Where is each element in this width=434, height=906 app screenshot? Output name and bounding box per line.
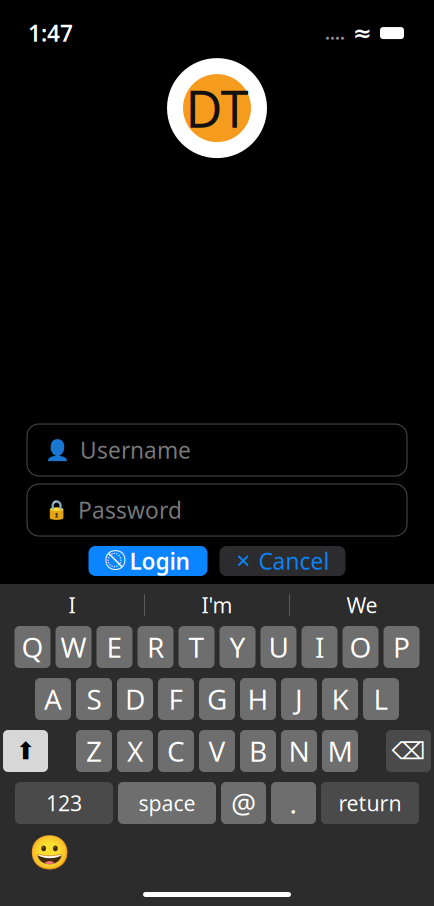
button[interactable]: A (35, 678, 71, 720)
button[interactable]: S (76, 678, 112, 720)
button[interactable]: Q (14, 626, 50, 668)
staticText: L (373, 680, 388, 718)
staticText: J (295, 680, 303, 718)
staticText: ≈ (353, 20, 372, 46)
staticText: M (327, 732, 352, 770)
staticText: E (106, 628, 122, 666)
staticText: N (288, 732, 309, 770)
staticText: R (147, 628, 164, 666)
staticText: ⬆ (15, 737, 35, 765)
button[interactable]: R (137, 626, 173, 668)
button[interactable]: W (55, 626, 91, 668)
button[interactable]: Z (76, 730, 112, 772)
button[interactable]: ⃠ (88, 546, 207, 576)
staticText: 1:47 (28, 18, 73, 48)
button[interactable]: I'm (145, 591, 289, 619)
staticText: ⃠ (106, 551, 122, 571)
staticText: K (331, 680, 348, 718)
staticText: X (127, 732, 143, 770)
button[interactable]: M (322, 730, 358, 772)
button[interactable]: Shift (3, 730, 48, 772)
staticText: return (338, 789, 401, 817)
button[interactable]: ✕ (219, 546, 345, 576)
staticText: A (44, 680, 62, 718)
staticText: D (125, 680, 145, 718)
staticText: P (393, 628, 410, 666)
button[interactable]: return (321, 782, 419, 824)
staticText: .... (325, 21, 345, 44)
staticText: DT (185, 74, 248, 142)
staticText: We (346, 591, 377, 619)
button[interactable]: V (199, 730, 235, 772)
button[interactable]: L (363, 678, 399, 720)
button[interactable]: C (158, 730, 194, 772)
staticText: V (208, 732, 225, 770)
staticText: 🔒 (45, 499, 68, 521)
staticText: U (268, 628, 288, 666)
button[interactable]: space (118, 782, 216, 824)
button[interactable]: G (199, 678, 235, 720)
button[interactable]: Delete (386, 730, 431, 772)
staticText: space (138, 789, 195, 817)
staticText: Cancel (258, 546, 329, 576)
staticText: I (315, 628, 324, 666)
button[interactable]: P (383, 626, 419, 668)
staticText: . (289, 784, 297, 822)
button[interactable]: N (281, 730, 317, 772)
button[interactable]: I (301, 626, 337, 668)
button[interactable]: T (178, 626, 214, 668)
staticText: F (168, 680, 183, 718)
staticText: @ (231, 784, 256, 822)
staticText: 😀 (29, 834, 71, 872)
staticText: B (249, 732, 267, 770)
button[interactable]: K (322, 678, 358, 720)
button[interactable]: I (0, 591, 144, 619)
button[interactable]: U (260, 626, 296, 668)
staticText: Y (229, 628, 245, 666)
staticText: 👤 (45, 439, 70, 461)
button[interactable]: X (117, 730, 153, 772)
button[interactable]: B (240, 730, 276, 772)
staticText: Q (21, 628, 43, 666)
button[interactable]: Emoji (33, 836, 67, 870)
staticText: I (68, 591, 75, 619)
staticText: Username (80, 435, 191, 465)
staticText: 123 (46, 789, 82, 817)
button[interactable]: . (271, 782, 316, 824)
button[interactable]: D (117, 678, 153, 720)
button[interactable]: O (342, 626, 378, 668)
button[interactable]: We (290, 591, 434, 619)
staticText: Password (78, 495, 182, 525)
staticText: H (247, 680, 268, 718)
staticText: G (207, 680, 227, 718)
staticText: Z (86, 732, 102, 770)
staticText: I'm (201, 591, 232, 619)
button[interactable]: Y (219, 626, 255, 668)
staticText: ⌫ (391, 737, 425, 765)
staticText: ✕ (235, 550, 251, 572)
button[interactable]: H (240, 678, 276, 720)
button[interactable]: F (158, 678, 194, 720)
button[interactable]: E (96, 626, 132, 668)
staticText: W (60, 628, 86, 666)
button[interactable]: @ (221, 782, 266, 824)
staticText: S (86, 680, 101, 718)
staticText: T (188, 628, 204, 666)
staticText: O (349, 628, 371, 666)
button[interactable]: J (281, 678, 317, 720)
staticText: Login (129, 546, 189, 576)
button[interactable]: 123 (15, 782, 113, 824)
staticText: C (167, 732, 185, 770)
